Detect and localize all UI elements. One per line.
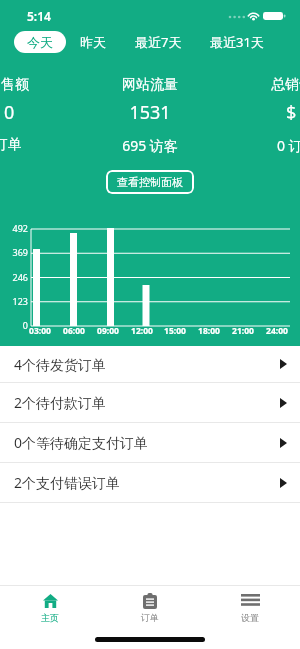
staticText: 2个支付错误订单 — [14, 473, 280, 492]
staticText: 5:14 — [27, 8, 51, 24]
staticText: 主页 — [41, 612, 59, 623]
staticText: 06:00 — [60, 325, 88, 337]
staticText: 售额 — [1, 76, 29, 94]
staticText: 订单 — [141, 612, 159, 623]
button[interactable]: 0个等待确定支付订单 — [0, 423, 300, 462]
button[interactable]: 昨天 — [74, 31, 112, 53]
button[interactable]: 2个支付错误订单 — [0, 463, 300, 502]
staticText: 21:00 — [229, 325, 257, 337]
staticText: 0 — [0, 319, 28, 331]
staticText: 03:00 — [26, 325, 54, 337]
staticText: 492 — [0, 222, 28, 234]
staticText: 今天 — [27, 34, 53, 50]
staticText: 0 订单 — [277, 136, 300, 155]
button[interactable]: 2个待付款订单 — [0, 383, 300, 422]
staticText: 2个待付款订单 — [14, 393, 280, 412]
staticText: 123 — [0, 295, 28, 307]
button[interactable]: 主页 — [24, 594, 76, 630]
staticText: 0 — [4, 100, 15, 125]
staticText: 总销售额 — [271, 76, 300, 94]
staticText: 0个等待确定支付订单 — [14, 433, 280, 452]
staticText: 设置 — [241, 612, 259, 623]
staticText: 最近31天 — [210, 33, 264, 51]
button[interactable]: 今天 — [14, 31, 66, 53]
staticText: 4个待发货订单 — [14, 355, 280, 374]
staticText: $ — [286, 100, 297, 125]
staticText: 695 访客 — [0, 136, 300, 155]
staticText: 查看控制面板 — [117, 175, 183, 189]
staticText: 1531 — [0, 100, 300, 125]
staticText: 246 — [0, 271, 28, 283]
button[interactable]: 查看控制面板 — [106, 170, 194, 194]
button[interactable]: 设置 — [224, 594, 276, 630]
staticText: 18:00 — [195, 325, 223, 337]
button[interactable]: 4个待发货订单 — [0, 346, 300, 382]
staticText: 昨天 — [80, 34, 106, 50]
button[interactable]: 最近31天 — [204, 31, 270, 53]
staticText: 09:00 — [94, 325, 122, 337]
button[interactable]: 最近7天 — [129, 31, 188, 53]
staticText: 24:00 — [263, 325, 291, 337]
staticText: 15:00 — [161, 325, 189, 337]
staticText: 最近7天 — [135, 33, 182, 51]
staticText: 369 — [0, 246, 28, 258]
staticText: 网站流量 — [0, 76, 300, 94]
staticText: 订单 — [0, 136, 22, 154]
button[interactable]: 订单 — [124, 593, 176, 629]
staticText: 12:00 — [128, 325, 156, 337]
